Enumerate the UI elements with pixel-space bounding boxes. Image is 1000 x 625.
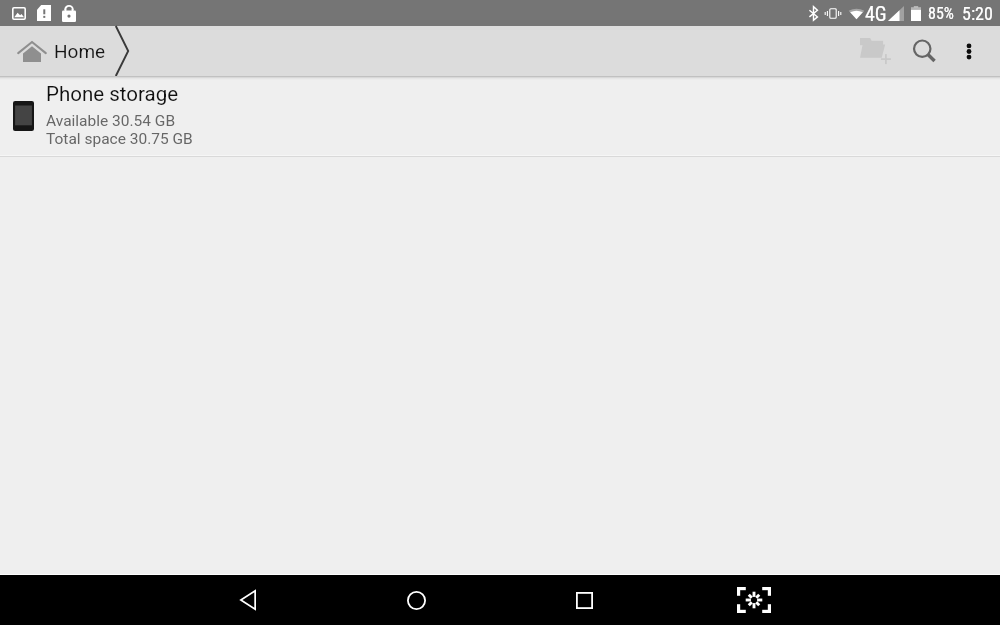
button[interactable]: Phone storage bbox=[0, 76, 1000, 157]
staticText: Home bbox=[54, 40, 106, 62]
staticText: Total space 30.75 GB bbox=[46, 130, 193, 148]
button[interactable]: Recents bbox=[556, 575, 612, 625]
button[interactable]: More options bbox=[945, 26, 993, 76]
button[interactable]: New folder bbox=[851, 25, 899, 75]
button[interactable]: Home bbox=[0, 26, 129, 76]
staticText: 85% bbox=[928, 4, 954, 23]
staticText: Phone storage bbox=[46, 82, 179, 106]
button[interactable]: Home bbox=[388, 575, 444, 625]
staticText: Available 30.54 GB bbox=[46, 112, 176, 130]
staticText: 5:20 bbox=[962, 3, 993, 24]
button[interactable]: Search bbox=[901, 26, 949, 76]
staticText: 4G bbox=[865, 2, 887, 25]
button[interactable]: Screenshot bbox=[726, 575, 782, 625]
button[interactable]: Back bbox=[220, 575, 276, 625]
